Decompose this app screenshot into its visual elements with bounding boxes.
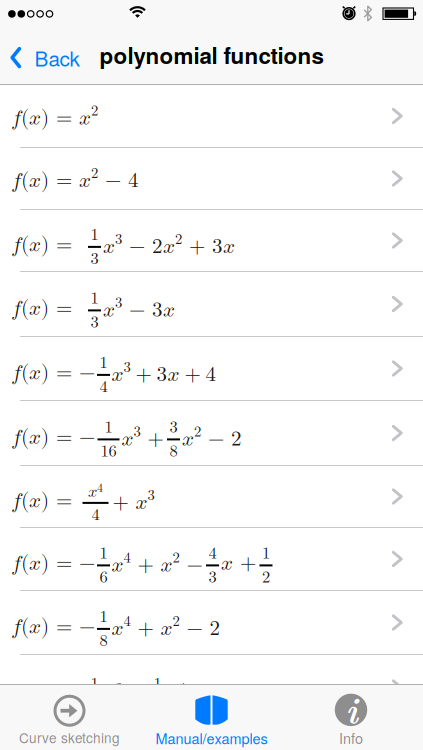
staticText: 1 — [99, 355, 107, 371]
staticText: 16 — [100, 443, 116, 460]
staticText: 𝑓(𝑥) = — [11, 490, 72, 511]
staticText: 𝑓(𝑥) = − — [11, 427, 95, 447]
button[interactable]: i — [280, 693, 421, 748]
staticText: Manual/examples — [155, 728, 267, 748]
staticText: 𝑓(𝑥) = − — [11, 616, 95, 637]
staticText: 𝑓(𝑥) = — [11, 298, 72, 319]
staticText: 1 — [153, 676, 161, 692]
staticText: 1 — [90, 227, 98, 243]
staticText: 𝑥4 — [88, 482, 103, 500]
staticText: 𝑥3 + 3𝑥 + 4 — [111, 360, 216, 385]
staticText: 1 — [90, 676, 98, 692]
staticText: 3 — [169, 419, 177, 436]
staticText: 1 — [99, 609, 107, 625]
staticText: 4 — [208, 545, 216, 562]
button[interactable]: 𝑓(𝑥) = — [0, 655, 423, 721]
staticText: 3 — [90, 314, 98, 331]
staticText: 𝑓(𝑥) = — [11, 234, 72, 255]
button[interactable]: 𝑓(𝑥) = 𝑥2 — [0, 85, 423, 148]
staticText: 𝑓(𝑥) = 𝑥2 — [11, 104, 98, 128]
staticText: 1 — [99, 545, 107, 562]
button[interactable]: 𝑓(𝑥) = 𝑥2 − 4 — [0, 148, 423, 210]
button[interactable]: Back — [0, 43, 79, 72]
staticText: Info — [339, 727, 363, 748]
staticText: 8 — [169, 443, 177, 460]
staticText: 𝑓(𝑥) = − — [11, 553, 95, 573]
button[interactable]: Curve sketching — [0, 694, 140, 747]
staticText: 3 — [90, 251, 98, 267]
staticText: 𝑥3 − 2𝑥2 + 3𝑥 — [103, 232, 235, 257]
staticText: i — [345, 683, 357, 733]
button[interactable]: 𝑓(𝑥) = − — [0, 337, 423, 401]
staticText: Curve sketching — [19, 728, 120, 747]
staticText: 𝑥3 + — [121, 425, 163, 449]
staticText: polynomial functions — [99, 39, 323, 71]
staticText: 3 — [208, 569, 216, 586]
button[interactable]: 𝑓(𝑥) = — [0, 272, 423, 337]
staticText: 4 — [99, 379, 107, 395]
staticText: 𝑓(𝑥) = — [11, 683, 72, 704]
button[interactable]: 𝑓(𝑥) = − — [0, 401, 423, 466]
button[interactable]: Manual/examples — [141, 694, 282, 748]
button[interactable]: 𝑓(𝑥) = — [0, 466, 423, 528]
staticText: 𝑥3 + — [103, 681, 145, 706]
staticText: 6 — [99, 569, 107, 586]
staticText: 1 — [104, 419, 112, 436]
staticText: + 𝑥3 — [112, 488, 154, 513]
staticText: 𝑥3 − 3𝑥 — [103, 296, 175, 320]
staticText: 8 — [99, 633, 107, 649]
button[interactable]: 𝑓(𝑥) = − — [0, 528, 423, 591]
staticText: Back — [34, 43, 79, 72]
button[interactable]: 𝑓(𝑥) = − — [0, 591, 423, 655]
staticText: 1 — [90, 290, 98, 307]
staticText: 1 — [262, 545, 270, 562]
staticText: 𝑥4 — [166, 681, 185, 706]
staticText: 𝑥4 + 𝑥2 − 2 — [111, 614, 220, 639]
button[interactable]: 𝑓(𝑥) = — [0, 210, 423, 272]
staticText: 4 — [91, 507, 99, 523]
staticText: 𝑥2 − 2 — [182, 425, 242, 449]
staticText: 𝑓(𝑥) = 𝑥2 − 4 — [11, 166, 139, 191]
staticText: 𝑥 + — [221, 553, 256, 573]
staticText: 2 — [262, 569, 270, 586]
staticText: 𝑥4 + 𝑥2 − — [111, 551, 202, 575]
staticText: 𝑓(𝑥) = − — [11, 362, 95, 383]
